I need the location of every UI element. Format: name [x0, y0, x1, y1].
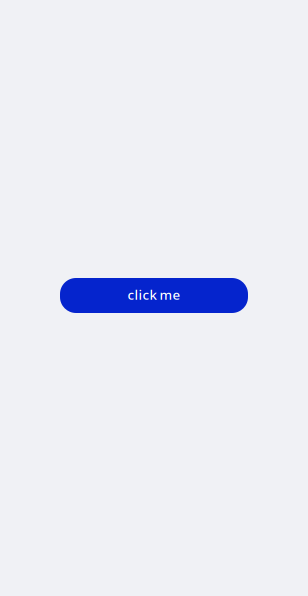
- button[interactable]: click me: [60, 278, 248, 313]
- staticText: click me: [127, 286, 180, 303]
